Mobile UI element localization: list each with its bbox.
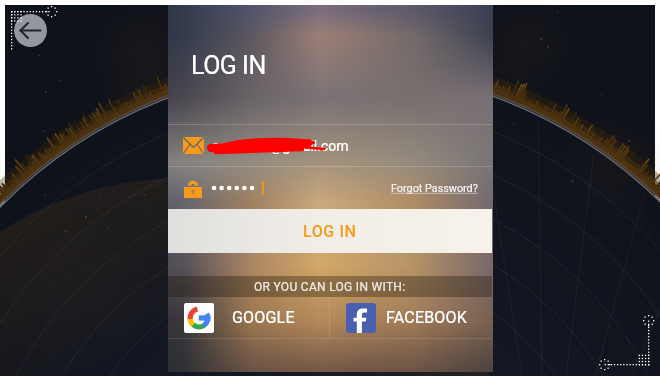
button[interactable]: Forgot Password?	[168, 167, 492, 209]
staticText: LOG IN	[303, 222, 357, 241]
staticText: OR YOU CAN LOG IN WITH:	[254, 280, 406, 294]
button[interactable]: Back	[14, 14, 47, 47]
button[interactable]: LOG IN	[168, 209, 492, 253]
staticText: someone@gmail.com	[212, 138, 349, 154]
staticText: FACEBOOK	[386, 308, 467, 327]
staticText: GOOGLE	[232, 308, 295, 327]
button[interactable]: FACEBOOK	[330, 297, 492, 338]
button[interactable]: someone@gmail.com	[168, 125, 492, 166]
staticText: Forgot Password?	[391, 182, 478, 195]
button[interactable]: Forgot Password?	[391, 182, 492, 195]
staticText: LOG IN	[191, 51, 266, 80]
button[interactable]: GOOGLE	[168, 297, 329, 338]
